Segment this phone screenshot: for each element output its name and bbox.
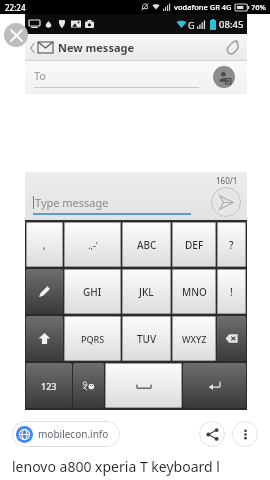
staticText: TUV	[137, 332, 157, 346]
staticText: G	[188, 19, 195, 31]
staticText: ?	[229, 238, 234, 252]
staticText: MNO	[182, 285, 207, 299]
button[interactable]: Space	[105, 363, 182, 408]
button[interactable]: ,	[26, 222, 63, 267]
button[interactable]: WXYZ	[172, 316, 216, 361]
button[interactable]: Share	[199, 421, 225, 447]
button[interactable]: Enter	[183, 363, 246, 408]
button[interactable]: mobilecon.info	[12, 421, 120, 447]
staticText: !	[230, 285, 233, 299]
button[interactable]: Shift	[26, 316, 63, 361]
staticText: lenovo a800 xperia T keyboard l	[12, 457, 220, 476]
button[interactable]: Add contact	[213, 66, 235, 88]
button[interactable]: Backspace	[217, 316, 246, 361]
staticText: .,-'	[88, 239, 98, 251]
staticText: mobilecon.info	[38, 427, 109, 441]
button[interactable]: ABC	[122, 222, 171, 267]
button[interactable]: Send	[211, 187, 241, 217]
button[interactable]: Attach	[223, 37, 243, 57]
staticText: vodafone GR 4G	[174, 2, 232, 12]
button[interactable]: Handwriting	[26, 269, 63, 314]
button[interactable]: 123	[26, 363, 72, 408]
button[interactable]: Symbols	[73, 363, 104, 408]
staticText: ABC	[137, 238, 157, 252]
button[interactable]: DEF	[172, 222, 216, 267]
button[interactable]: TUV	[122, 316, 171, 361]
button[interactable]: New message	[28, 38, 137, 57]
button[interactable]: .,-'	[64, 222, 121, 267]
staticText: 160/1	[216, 175, 238, 186]
staticText: 08:45	[219, 18, 244, 31]
staticText: To	[34, 68, 47, 83]
staticText: DEF	[185, 238, 204, 252]
staticText: WXYZ	[182, 333, 207, 345]
staticText: 123	[41, 380, 57, 392]
button[interactable]: !	[217, 269, 246, 314]
staticText: 76%	[251, 2, 266, 12]
staticText: PQRS	[81, 333, 105, 345]
button[interactable]: PQRS	[64, 316, 121, 361]
button[interactable]: MNO	[172, 269, 216, 314]
button[interactable]: JKL	[122, 269, 171, 314]
button[interactable]: Close	[4, 23, 28, 47]
staticText: 22:24	[5, 2, 26, 13]
button[interactable]: GHI	[64, 269, 121, 314]
button[interactable]: More options	[232, 421, 258, 447]
staticText: GHI	[83, 285, 102, 299]
staticText: Type message	[35, 195, 109, 210]
staticText: New message	[58, 40, 135, 55]
staticText: JKL	[139, 285, 154, 299]
button[interactable]: ?	[217, 222, 246, 267]
staticText: ,	[43, 238, 46, 252]
